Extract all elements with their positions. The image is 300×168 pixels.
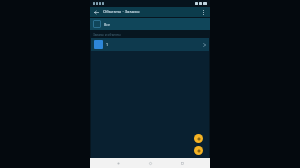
- other: Open: [203, 43, 206, 47]
- button[interactable]: Home: [146, 159, 154, 167]
- button[interactable]: Back: [114, 159, 122, 167]
- staticText: 1: [106, 42, 203, 47]
- staticText: Объекты · Заказы: [103, 9, 199, 15]
- button[interactable]: My location: [194, 146, 203, 155]
- button[interactable]: Все: [90, 18, 210, 30]
- button[interactable]: 1: [91, 38, 209, 51]
- staticText: Заказы и объекты: [93, 33, 121, 37]
- button[interactable]: Back: [92, 8, 101, 17]
- staticText: Все: [104, 22, 111, 27]
- button[interactable]: More options: [199, 8, 208, 17]
- button[interactable]: Add layer: [194, 134, 203, 143]
- button[interactable]: Recent apps: [178, 159, 186, 167]
